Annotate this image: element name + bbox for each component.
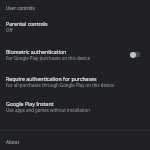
staticText: About bbox=[6, 139, 20, 144]
staticText: Parental controls bbox=[6, 20, 48, 27]
button[interactable]: Toggle off bbox=[130, 51, 140, 58]
staticText: Biometric authentication bbox=[6, 48, 67, 55]
staticText: Google Play Instant bbox=[6, 100, 54, 107]
staticText: For all purchases through Google Play on… bbox=[6, 82, 114, 88]
staticText: Off bbox=[6, 27, 13, 33]
button[interactable]: Parental controls bbox=[0, 20, 150, 48]
button[interactable]: About bbox=[0, 131, 150, 150]
button[interactable]: Google Play Instant bbox=[0, 100, 150, 130]
button[interactable]: Require authentication for purchases bbox=[0, 75, 150, 100]
button[interactable]: User controls bbox=[0, 0, 150, 20]
staticText: Use apps and games without installation bbox=[6, 107, 90, 113]
button[interactable]: Biometric authentication bbox=[0, 48, 150, 75]
staticText: Require authentication for purchases bbox=[6, 75, 97, 82]
staticText: For Google Play purchases on this device bbox=[6, 55, 90, 61]
staticText: User controls bbox=[6, 5, 35, 11]
